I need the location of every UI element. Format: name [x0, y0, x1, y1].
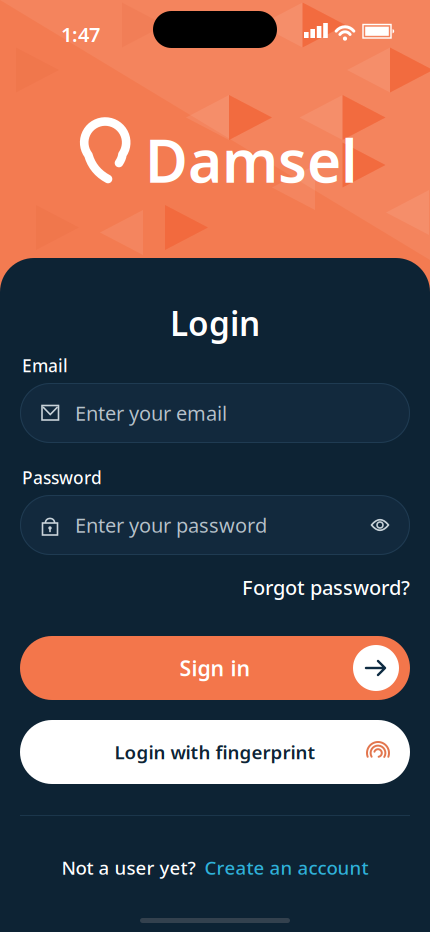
staticText: Email	[22, 354, 68, 377]
staticText: Forgot password?	[242, 574, 410, 601]
button[interactable]: Sign in	[20, 636, 410, 700]
staticText: Sign in	[179, 654, 250, 682]
button[interactable]: Enter your password	[20, 495, 410, 555]
staticText: Enter your password	[75, 512, 267, 538]
staticText: Not a user yet?	[61, 855, 195, 880]
staticText: Create an account	[204, 855, 368, 880]
button[interactable]: Forgot password?	[242, 574, 410, 601]
button[interactable]: Enter your email	[20, 383, 410, 443]
button[interactable]: Create an account	[204, 855, 368, 880]
button[interactable]: Login with fingerprint	[20, 720, 410, 784]
staticText: 1:47	[61, 21, 100, 48]
staticText: Damsel	[145, 121, 358, 199]
staticText: Login with fingerprint	[114, 740, 315, 764]
staticText: Login	[170, 301, 260, 345]
staticText: Password	[22, 466, 102, 489]
button[interactable]: Show password	[360, 505, 400, 545]
staticText: Enter your email	[75, 400, 227, 426]
